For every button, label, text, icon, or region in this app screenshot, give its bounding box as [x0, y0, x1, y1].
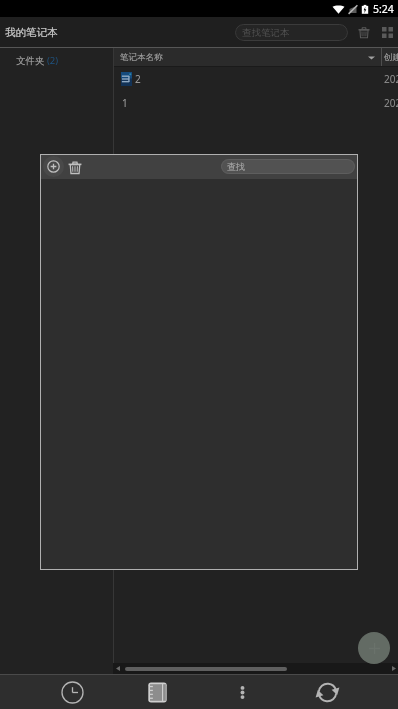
staticText: 查找笔记本: [242, 27, 290, 39]
staticText: 2025/0: [384, 72, 398, 86]
button[interactable]: Sync: [285, 675, 370, 709]
button[interactable]: Add notebook: [358, 632, 390, 664]
staticText: 2025/0: [384, 96, 398, 110]
button[interactable]: Delete: [65, 157, 85, 177]
staticText: 2: [135, 72, 141, 86]
button[interactable]: Add: [43, 156, 64, 177]
staticText: 笔记本名称: [120, 52, 163, 63]
button[interactable]: Notebooks: [115, 675, 200, 709]
staticText: 1: [122, 96, 128, 110]
button[interactable]: 查找: [221, 159, 355, 174]
staticText: 创建日期: [384, 52, 398, 63]
button[interactable]: 2: [114, 67, 398, 91]
staticText: 查找: [227, 161, 245, 172]
button[interactable]: 查找笔记本: [235, 24, 348, 41]
button[interactable]: Recent: [30, 675, 115, 709]
button[interactable]: 1: [114, 91, 398, 115]
button[interactable]: Grid view: [378, 23, 396, 41]
staticText: 文件夹: [16, 54, 47, 67]
button[interactable]: Delete: [355, 23, 373, 41]
staticText: 5:24: [373, 2, 394, 16]
staticText: 我的笔记本: [5, 26, 58, 39]
button[interactable]: More options: [200, 675, 285, 709]
staticText: (2): [47, 54, 59, 67]
